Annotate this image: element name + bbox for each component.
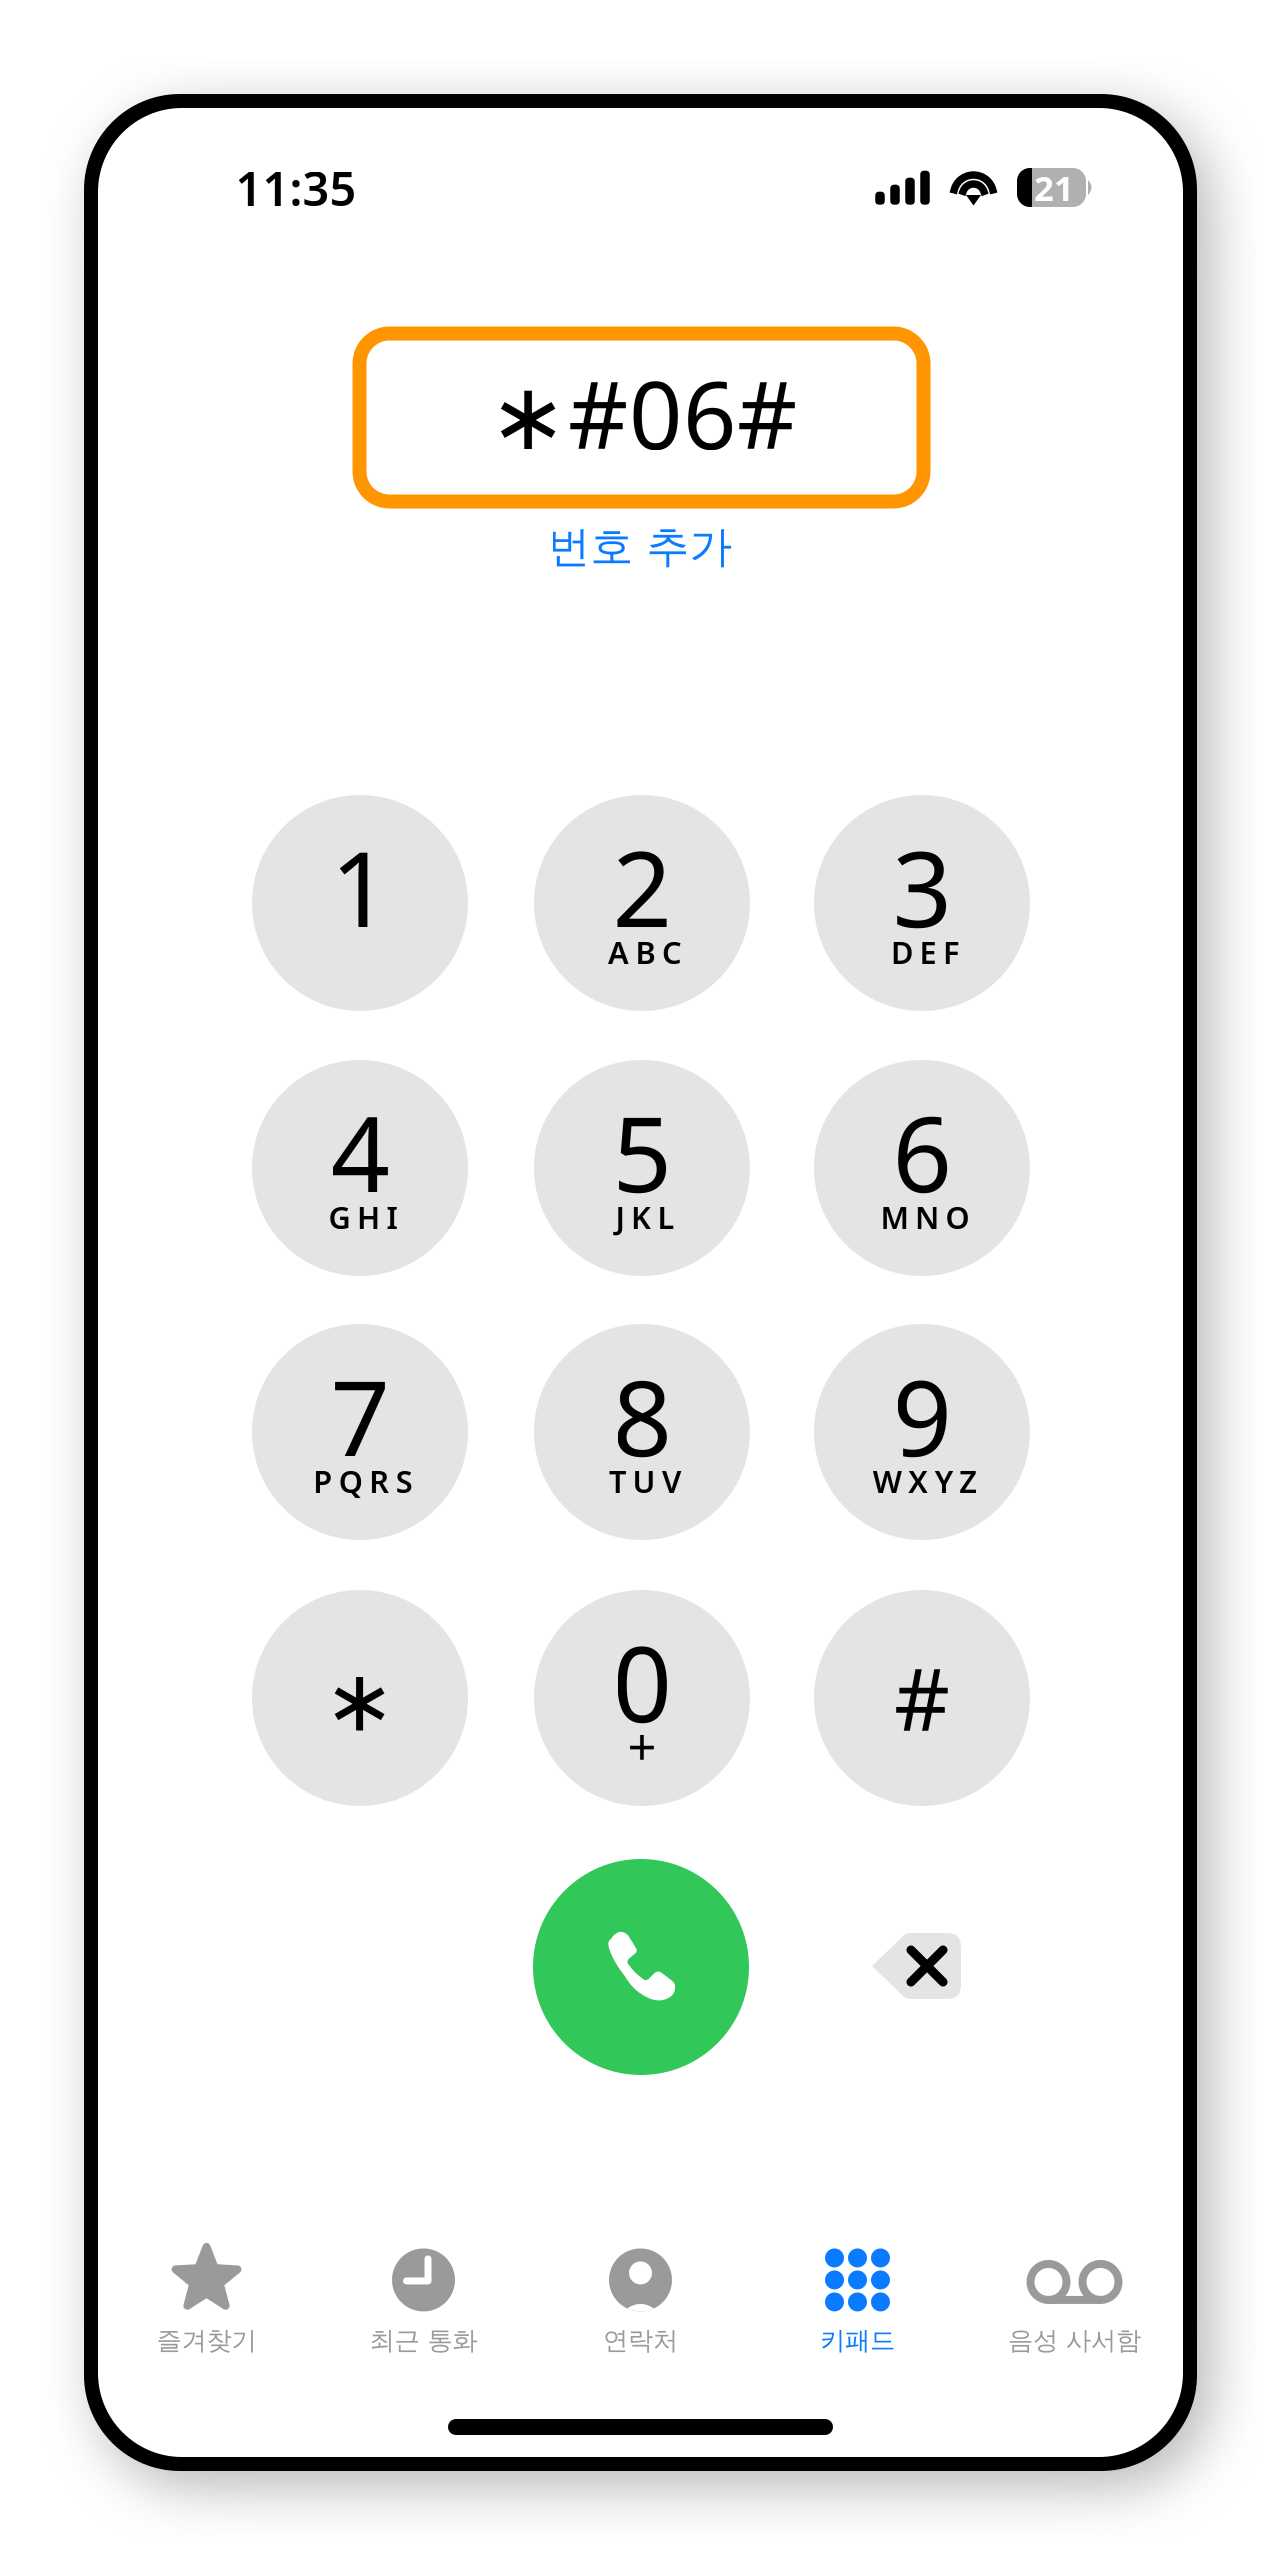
staticText: ABC xyxy=(608,932,682,972)
staticText: 음성 사서함 xyxy=(1008,2325,1141,2356)
button[interactable]: Call xyxy=(533,1859,749,2075)
staticText: 21 xyxy=(1034,164,1074,210)
staticText: 2 xyxy=(612,818,671,956)
staticText: + xyxy=(627,1712,656,1780)
button[interactable]: Delete xyxy=(871,1932,962,2000)
button[interactable]: # xyxy=(814,1590,1030,1806)
staticText: MNO xyxy=(880,1197,969,1237)
button[interactable]: 5 xyxy=(534,1060,750,1276)
staticText: TUV xyxy=(609,1461,681,1501)
button[interactable]: 연락처 xyxy=(532,2225,749,2375)
staticText: 번호 추가 xyxy=(547,521,732,573)
staticText: 5 xyxy=(612,1083,671,1221)
staticText: 9 xyxy=(892,1347,951,1485)
staticText: 키패드 xyxy=(820,2325,895,2356)
staticText: ∗#06# xyxy=(489,351,797,475)
staticText: 최근 통화 xyxy=(369,2325,477,2356)
button[interactable]: 9 xyxy=(814,1324,1030,1540)
staticText: 즐겨찾기 xyxy=(156,2325,256,2356)
staticText: 6 xyxy=(892,1083,951,1221)
staticText: WXYZ xyxy=(873,1461,977,1501)
button[interactable]: 4 xyxy=(252,1060,468,1276)
staticText: 8 xyxy=(612,1347,671,1485)
button[interactable]: 6 xyxy=(814,1060,1030,1276)
button[interactable]: 즐겨찾기 xyxy=(98,2225,315,2375)
staticText: JKL xyxy=(615,1197,674,1237)
button[interactable]: 최근 통화 xyxy=(315,2225,532,2375)
staticText: DEF xyxy=(891,932,959,972)
button[interactable]: 2 xyxy=(534,795,750,1011)
staticText: PQRS xyxy=(313,1461,413,1501)
button[interactable]: 3 xyxy=(814,795,1030,1011)
button[interactable]: 키패드 xyxy=(749,2225,966,2375)
staticText: 4 xyxy=(330,1083,389,1221)
staticText: 7 xyxy=(330,1347,389,1485)
staticText: 0 xyxy=(612,1613,671,1751)
button[interactable]: ∗ xyxy=(252,1590,468,1806)
staticText: 1 xyxy=(330,818,389,956)
button[interactable]: 1 xyxy=(252,795,468,1011)
button[interactable]: 번호 추가 xyxy=(500,512,780,582)
staticText: # xyxy=(894,1639,950,1755)
button[interactable]: 음성 사서함 xyxy=(966,2225,1183,2375)
staticText: 11:35 xyxy=(235,157,356,219)
button[interactable]: 7 xyxy=(252,1324,468,1540)
staticText: 3 xyxy=(892,818,951,956)
staticText: GHI xyxy=(328,1197,397,1237)
button[interactable]: 0 xyxy=(534,1590,750,1806)
staticText: 연락처 xyxy=(603,2325,678,2356)
staticText: ∗ xyxy=(324,1653,396,1749)
button[interactable]: 8 xyxy=(534,1324,750,1540)
